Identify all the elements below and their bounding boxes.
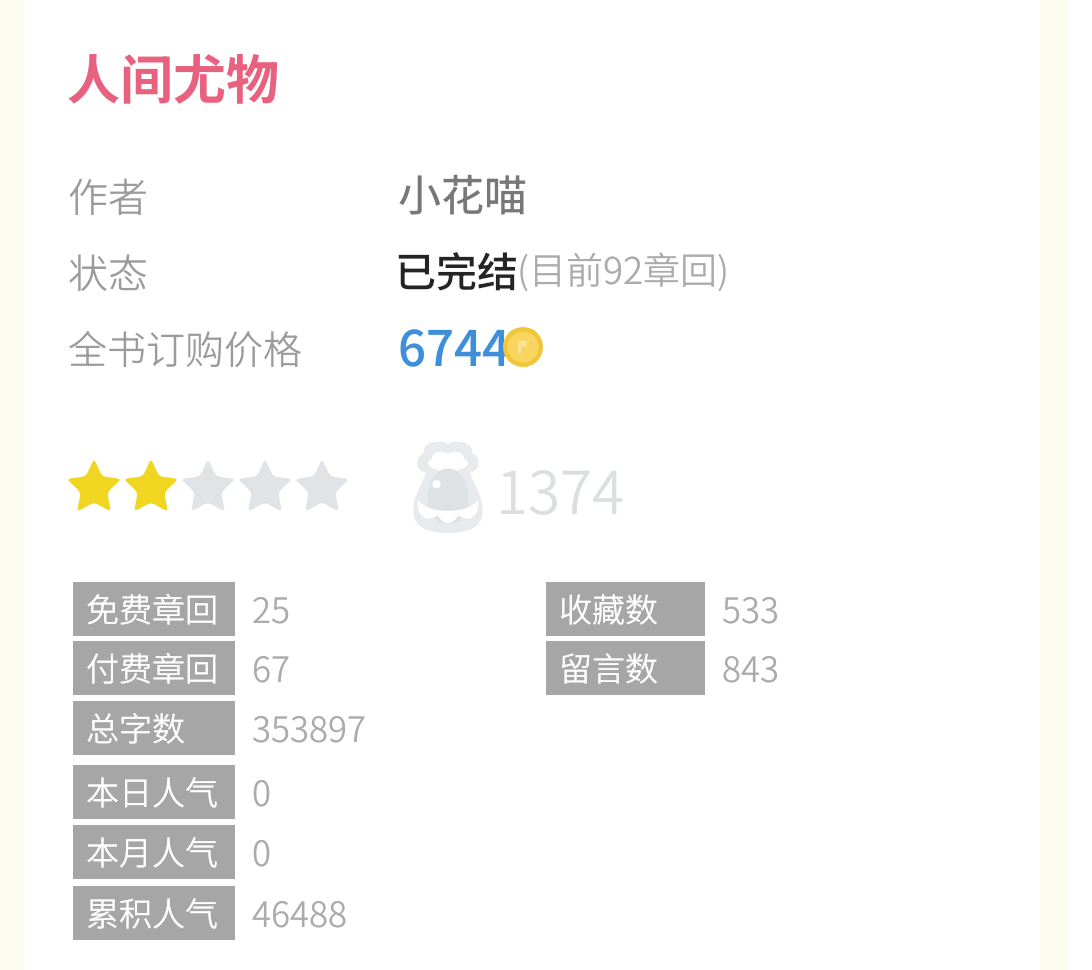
button[interactable]: 留言数 843 bbox=[546, 641, 782, 695]
button[interactable]: 累积人气 46488 bbox=[73, 886, 350, 940]
button[interactable]: 本月人气 0 bbox=[73, 825, 274, 879]
staticText: 小花喵 bbox=[398, 165, 529, 227]
button[interactable]: 总字数 353897 bbox=[73, 701, 369, 755]
button[interactable]: 收藏数 533 bbox=[546, 582, 782, 636]
button[interactable]: 付费章回 67 bbox=[73, 641, 293, 695]
staticText: 6744 bbox=[398, 314, 512, 385]
staticText: 作者 bbox=[68, 169, 150, 227]
staticText: (目前92章回) bbox=[517, 245, 731, 298]
button[interactable]: 人间尤物 bbox=[67, 42, 281, 118]
staticText: 全书订购价格 bbox=[68, 322, 304, 378]
button[interactable]: 免费章回 25 bbox=[73, 582, 293, 636]
button[interactable]: 本日人气 0 bbox=[73, 765, 274, 819]
staticText: 1374 bbox=[496, 451, 626, 536]
staticText: 状态 bbox=[68, 245, 150, 303]
button[interactable]: Rating 2 of 5 stars bbox=[66, 454, 386, 522]
staticText: 已完结 bbox=[395, 243, 520, 302]
other: Views bbox=[412, 441, 484, 533]
